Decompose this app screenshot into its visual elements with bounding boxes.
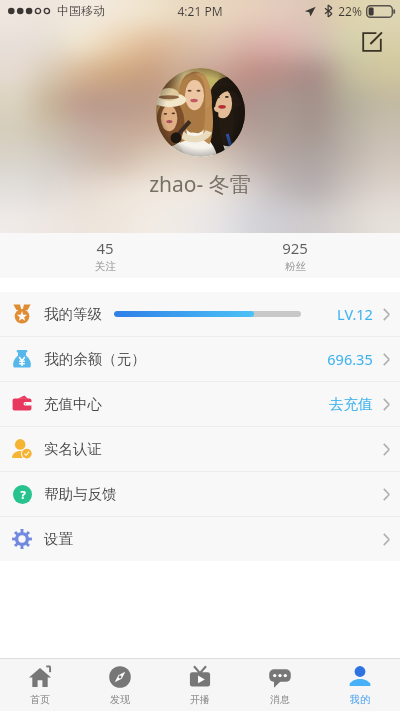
staticText: 4:21 PM <box>177 3 223 19</box>
staticText: 696.35 <box>327 349 373 369</box>
button[interactable]: 实名认证 <box>0 427 400 471</box>
button[interactable]: 开播 <box>160 659 240 711</box>
button[interactable]: ? <box>0 472 400 516</box>
button[interactable]: 消息 <box>240 659 320 711</box>
button[interactable]: 首页 <box>0 659 80 711</box>
staticText: zhao- 冬雷 <box>149 170 251 199</box>
staticText: 925 <box>282 238 308 258</box>
staticText: LV.12 <box>337 304 373 324</box>
staticText: ? <box>20 487 26 502</box>
button[interactable]: 925 <box>200 233 390 278</box>
staticText: 帮助与反馈 <box>44 485 117 503</box>
staticText: 我的余额（元） <box>44 350 146 368</box>
staticText: 发现 <box>110 693 130 706</box>
button[interactable]: 我的等级 <box>0 292 400 336</box>
staticText: 45 <box>96 238 114 258</box>
button[interactable]: 45 <box>10 233 200 278</box>
staticText: 实名认证 <box>44 440 102 458</box>
staticText: 粉丝 <box>285 260 306 273</box>
staticText: 我的等级 <box>44 305 102 323</box>
button[interactable]: 我的 <box>320 659 400 711</box>
button[interactable]: 设置 <box>0 517 400 561</box>
staticText: 消息 <box>270 693 290 706</box>
staticText: 设置 <box>44 530 73 548</box>
staticText: 我的 <box>350 693 370 706</box>
button[interactable]: 发现 <box>80 659 160 711</box>
button[interactable]: 充值中心 <box>0 382 400 426</box>
button[interactable]: Edit profile <box>356 26 388 58</box>
staticText: 22% <box>338 3 362 19</box>
staticText: 中国移动 <box>57 3 105 18</box>
staticText: 关注 <box>95 260 116 273</box>
staticText: 开播 <box>190 693 210 706</box>
staticText: 首页 <box>30 693 50 706</box>
button[interactable]: Profile photo <box>156 68 245 157</box>
staticText: 去充值 <box>329 395 373 413</box>
button[interactable]: 我的余额（元） <box>0 337 400 381</box>
staticText: 充值中心 <box>44 395 102 413</box>
